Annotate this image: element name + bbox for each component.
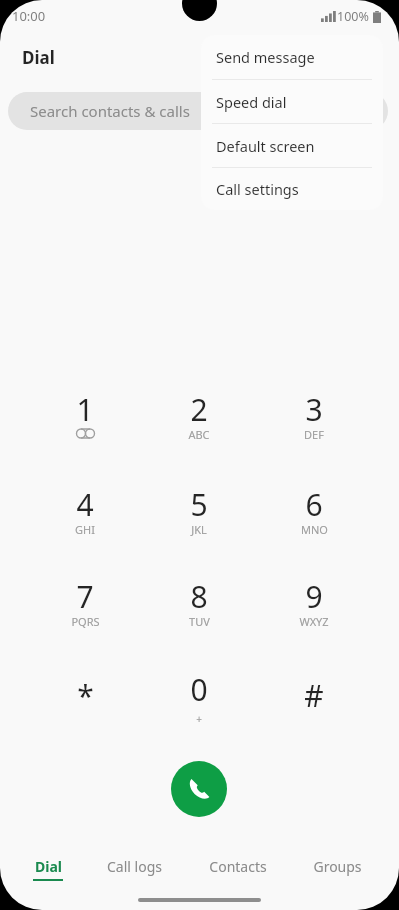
staticText: 1 [76,389,94,430]
staticText: Send message [216,47,315,67]
button[interactable]: Groups [299,846,375,890]
button[interactable]: 6 [269,481,359,549]
staticText: 6 [305,484,323,525]
button[interactable]: Dial [22,846,74,890]
button[interactable]: 9 [269,573,359,641]
staticText: Call logs [107,857,162,876]
staticText: Default screen [216,136,315,156]
button[interactable]: 8 [154,573,244,641]
button[interactable]: Speed dial [201,80,383,123]
staticText: ABC [188,427,210,442]
staticText: Speed dial [216,92,287,112]
button[interactable]: Call [171,761,227,817]
button[interactable]: Default screen [201,124,383,167]
staticText: 9 [305,576,323,617]
button[interactable]: Contacts [194,846,282,890]
button[interactable]: # [269,666,359,734]
staticText: Dial [22,46,55,69]
staticText: TUV [189,614,210,629]
staticText: 2 [190,389,208,430]
staticText: Search contacts & calls [30,101,190,121]
button[interactable]: 7 [40,573,130,641]
staticText: 10:00 [12,7,46,25]
staticText: 5 [190,484,208,525]
staticText: WXYZ [299,614,329,629]
button[interactable]: 1 [40,386,130,454]
staticText: 0 [190,669,208,710]
staticText: GHI [75,522,95,537]
staticText: + [196,712,202,726]
button[interactable]: Call logs [88,846,180,890]
button[interactable]: 2 [154,386,244,454]
button[interactable]: Send message [201,35,383,79]
staticText: Groups [313,857,362,876]
staticText: 100% [337,8,369,25]
staticText: Contacts [209,857,267,876]
staticText: # [304,675,324,716]
staticText: MNO [301,522,328,537]
staticText: * [77,675,94,716]
button[interactable]: Call settings [201,168,383,210]
staticText: JKL [191,522,207,537]
button[interactable]: 3 [269,386,359,454]
staticText: Dial [35,857,62,876]
button[interactable]: 0 [154,666,244,734]
button[interactable]: Search contacts & calls [8,92,388,130]
staticText: Call settings [216,179,299,199]
staticText: 8 [190,576,208,617]
staticText: 4 [76,484,94,525]
staticText: PQRS [71,614,100,629]
button[interactable]: 5 [154,481,244,549]
button[interactable]: 4 [40,481,130,549]
staticText: DEF [304,427,324,442]
staticText: 7 [76,576,94,617]
staticText: 3 [305,389,323,430]
button[interactable]: * [40,666,130,734]
